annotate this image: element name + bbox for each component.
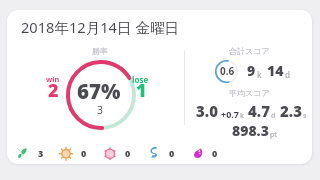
staticText: s xyxy=(303,111,307,121)
staticText: 3.0 xyxy=(196,101,218,121)
staticText: 4.7 xyxy=(248,101,270,121)
staticText: 3 xyxy=(97,103,104,117)
staticText: d xyxy=(285,69,290,80)
button[interactable]: 2018年12月14日 金曜日 xyxy=(7,10,312,164)
staticText: 0 xyxy=(169,147,175,159)
button[interactable]: Psychic type xyxy=(189,143,225,164)
staticText: 0.6 xyxy=(220,64,235,78)
button[interactable]: Fire type xyxy=(57,143,93,164)
staticText: 勝率 xyxy=(92,46,108,56)
staticText: win xyxy=(46,74,60,84)
staticText: 0 xyxy=(212,147,218,159)
staticText: k xyxy=(240,111,244,121)
staticText: 9 xyxy=(247,61,256,80)
staticText: 平均スコア xyxy=(229,88,270,98)
staticText: 0 xyxy=(125,147,131,159)
staticText: 3 xyxy=(38,147,44,159)
staticText: 合計スコア xyxy=(229,46,270,56)
staticText: +0.7 xyxy=(221,108,239,120)
staticText: d xyxy=(271,111,276,121)
button[interactable]: Water type xyxy=(145,143,181,164)
staticText: 67% xyxy=(77,77,121,105)
staticText: 1 xyxy=(136,78,147,103)
button[interactable]: Fairy type xyxy=(101,143,137,164)
staticText: 2018年12月14日 金曜日 xyxy=(21,17,180,37)
staticText: pt xyxy=(270,130,278,140)
staticText: lose xyxy=(132,74,149,85)
staticText: 898.3 xyxy=(232,121,269,140)
staticText: 14 xyxy=(267,61,284,80)
staticText: 2.3 xyxy=(280,101,302,121)
staticText: 0 xyxy=(81,147,87,159)
button[interactable]: Grass type xyxy=(13,143,49,164)
staticText: 2 xyxy=(48,78,59,103)
staticText: k xyxy=(257,69,262,80)
